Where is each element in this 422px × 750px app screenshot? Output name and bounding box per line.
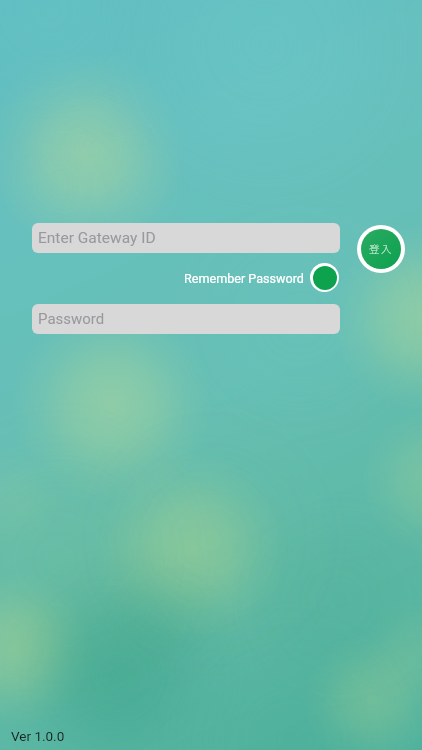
button[interactable]: Login [357, 225, 405, 273]
button[interactable]: Enter Gateway ID [32, 223, 340, 253]
button[interactable]: Password [32, 304, 340, 334]
button[interactable]: Remember password toggle [310, 263, 339, 292]
staticText: Password [38, 310, 105, 328]
staticText: Enter Gateway ID [38, 229, 156, 247]
staticText: Ver 1.0.0 [11, 728, 65, 744]
staticText: 登入 [369, 241, 394, 256]
staticText: Remember Password [184, 271, 304, 286]
